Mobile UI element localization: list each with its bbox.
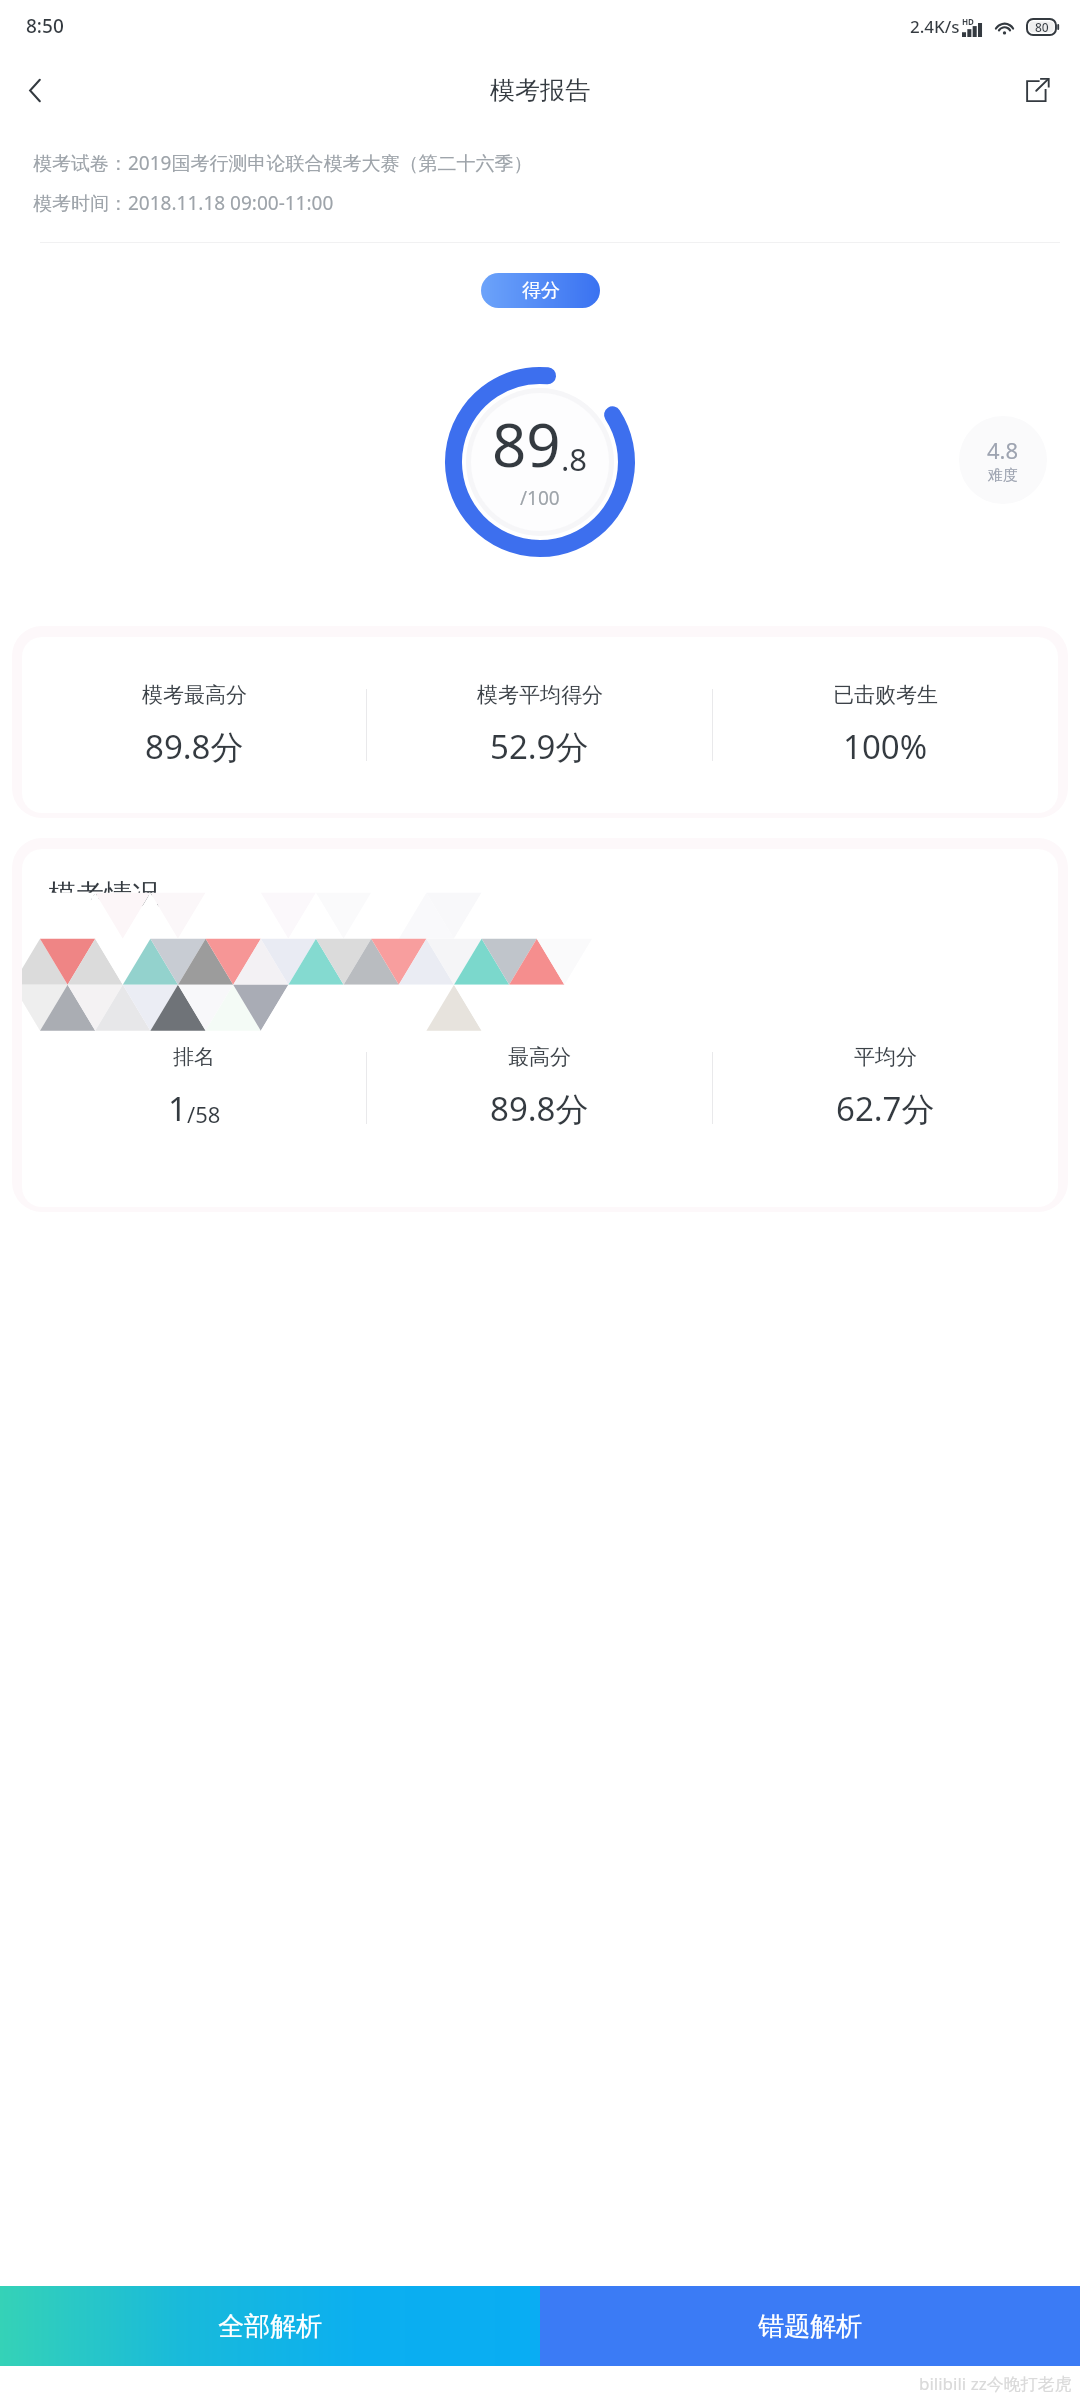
staticText: 89.8分 (490, 1086, 589, 1131)
staticText: 全部解析 (218, 2310, 322, 2343)
staticText: 平均分 (854, 1044, 917, 1070)
staticText: 难度 (988, 466, 1018, 485)
staticText: 89 (492, 403, 561, 485)
staticText: 100% (843, 724, 928, 769)
staticText: 4.8 (987, 435, 1019, 465)
staticText: .8 (561, 438, 588, 480)
staticText: 62.7分 (836, 1086, 935, 1131)
button[interactable]: 模考最高分 (22, 682, 366, 769)
staticText: 模考试卷：2019国考行测申论联合模考大赛（第二十六季） (33, 150, 533, 176)
staticText: 80 (1035, 19, 1049, 35)
staticText: 排名 (173, 1044, 215, 1070)
button[interactable]: 最高分 (367, 1044, 712, 1131)
button[interactable]: Share (1008, 61, 1066, 119)
button[interactable]: 平均分 (713, 1044, 1058, 1131)
staticText: 模考报告 (490, 75, 590, 106)
staticText: 模考最高分 (142, 682, 247, 708)
staticText: /58 (187, 1099, 221, 1129)
staticText: 8:50 (26, 13, 64, 39)
staticText: 模考平均得分 (477, 682, 603, 708)
staticText: 模考时间：2018.11.18 09:00-11:00 (33, 190, 334, 216)
staticText: 最高分 (508, 1044, 571, 1070)
staticText: /100 (520, 485, 560, 511)
staticText: bilibili zz今晚打老虎 (919, 2372, 1072, 2395)
staticText: HD (962, 16, 974, 27)
button[interactable]: 错题解析 (540, 2286, 1080, 2366)
staticText: 模考情况 (48, 877, 160, 912)
staticText: 52.9分 (490, 724, 589, 769)
button[interactable]: 全部解析 (0, 2286, 540, 2366)
staticText: 得分 (522, 279, 560, 303)
button[interactable]: 排名 (22, 1044, 366, 1131)
staticText: 89.8分 (145, 724, 244, 769)
button[interactable]: 已击败考生 (713, 682, 1058, 769)
button[interactable]: 模考平均得分 (367, 682, 712, 769)
button[interactable]: Back (6, 61, 64, 119)
button[interactable]: 得分 (481, 273, 600, 308)
staticText: 2.4K/s (910, 15, 960, 38)
staticText: 已击败考生 (833, 682, 938, 708)
staticText: 1 (168, 1086, 187, 1131)
staticText: 错题解析 (758, 2310, 862, 2343)
